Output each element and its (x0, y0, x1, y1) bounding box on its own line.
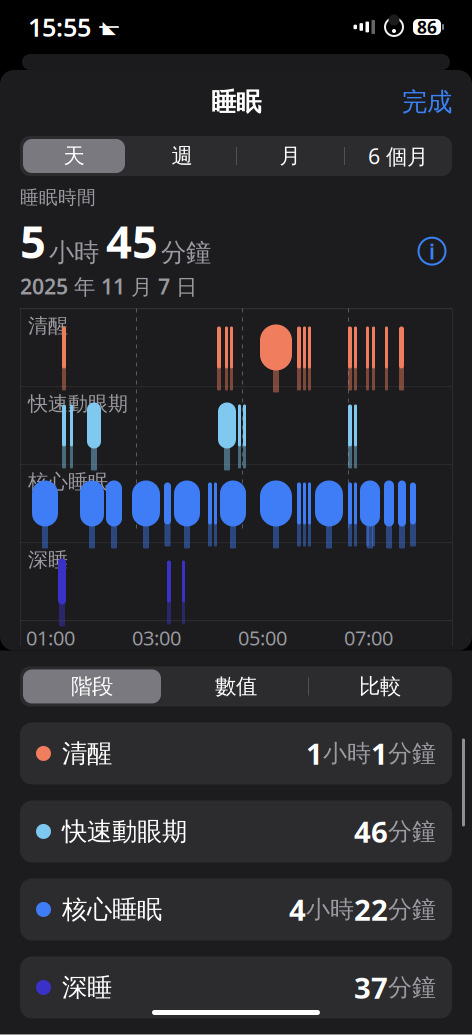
button[interactable]: 快速動眼期 (20, 800, 452, 862)
staticText: 1 (371, 734, 388, 773)
staticText: 6 個月 (368, 142, 428, 170)
staticText: 深睡 (28, 547, 68, 572)
staticText: 37 (354, 968, 388, 1007)
staticText: 15:55 (28, 10, 91, 44)
staticText: 45 (106, 211, 158, 271)
button[interactable]: 睡眠時間說明 (412, 231, 452, 271)
staticText: 天 (63, 143, 84, 169)
staticText: 03:00 (132, 624, 181, 651)
button[interactable]: 6 個月 (344, 136, 452, 176)
staticText: 月 (279, 143, 300, 169)
staticText: 睡眠時間 (20, 186, 96, 209)
staticText: 清醒 (62, 738, 112, 769)
staticText: 深睡 (62, 972, 112, 1003)
staticText: 數值 (215, 673, 257, 700)
staticText: 階段 (71, 673, 113, 700)
staticText: 46 (354, 812, 388, 851)
staticText: 5 (20, 211, 46, 271)
staticText: 05:00 (238, 624, 287, 651)
staticText: 1 (306, 734, 323, 773)
staticText: 07:00 (344, 624, 393, 651)
button[interactable]: 月 (236, 136, 344, 176)
button[interactable]: 階段 (20, 666, 164, 706)
staticText: 22 (354, 890, 388, 929)
staticText: 小時 (49, 237, 99, 268)
button[interactable]: 核心睡眠 (20, 878, 452, 940)
staticText: 2025 年 11 月 7 日 (20, 272, 197, 300)
button[interactable]: 天 (20, 136, 128, 176)
staticText: 分鐘 (388, 895, 436, 924)
staticText: 分鐘 (388, 817, 436, 846)
staticText: 核心睡眠 (62, 894, 162, 925)
staticText: 小時 (306, 895, 354, 924)
staticText: i (429, 237, 435, 265)
staticText: 比較 (359, 673, 401, 700)
button[interactable]: 週 (128, 136, 236, 176)
button[interactable]: 數值 (164, 666, 308, 706)
staticText: 4 (289, 890, 306, 929)
button[interactable]: 完成 (382, 76, 472, 127)
staticText: 01:00 (26, 624, 75, 651)
staticText: 分鐘 (388, 739, 436, 768)
button[interactable]: 深睡 (20, 956, 452, 1018)
staticText: 快速動眼期 (28, 391, 128, 416)
staticText: 週 (171, 143, 192, 169)
staticText: 小時 (323, 739, 371, 768)
staticText: 快速動眼期 (62, 816, 187, 847)
staticText: 完成 (402, 86, 452, 117)
staticText: 86 (417, 15, 437, 38)
staticText: 睡眠 (211, 86, 261, 117)
staticText: 清醒 (28, 313, 68, 338)
staticText: 分鐘 (388, 973, 436, 1002)
staticText: ◣ (102, 17, 115, 37)
staticText: 核心睡眠 (28, 469, 108, 494)
button[interactable]: 比較 (308, 666, 452, 706)
staticText: 分鐘 (161, 237, 211, 268)
button[interactable]: 清醒 (20, 722, 452, 784)
